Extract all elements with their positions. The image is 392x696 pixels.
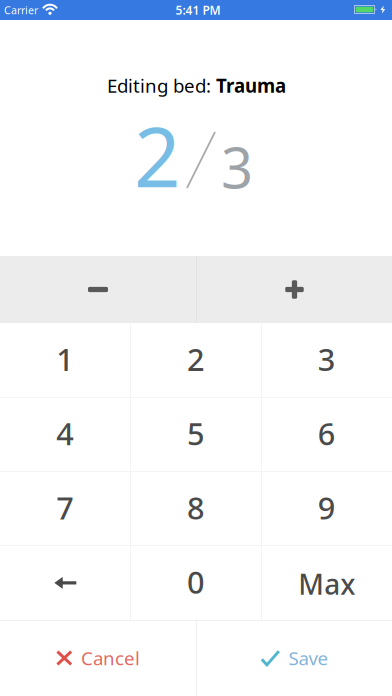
button[interactable]: 7 (0, 471, 131, 546)
staticText: 7 (56, 487, 74, 528)
button[interactable]: 2 (131, 323, 261, 397)
staticText: 3 (221, 129, 253, 204)
staticText: Cancel (81, 646, 140, 670)
button[interactable]: 6 (261, 397, 392, 471)
staticText: 5 (187, 413, 205, 454)
staticText: Carrier (4, 3, 38, 17)
staticText: 8 (187, 487, 205, 528)
button[interactable]: Decrement (0, 256, 196, 323)
button[interactable]: 8 (131, 471, 261, 546)
staticText: 9 (318, 487, 336, 528)
button[interactable]: Save (197, 620, 392, 696)
staticText: 0 (187, 561, 205, 602)
staticText: 6 (318, 413, 336, 454)
staticText: 1 (56, 339, 74, 379)
button[interactable]: 1 (0, 323, 131, 397)
button[interactable]: 3 (261, 323, 392, 397)
button[interactable]: Increment (197, 256, 392, 323)
staticText: Max (298, 565, 355, 602)
staticText: 2 (187, 339, 205, 379)
staticText: 5:41 PM (175, 2, 220, 18)
button[interactable]: 9 (261, 471, 392, 546)
button[interactable]: Cancel (0, 620, 196, 696)
staticText: 3 (318, 339, 336, 379)
button[interactable]: 0 (131, 546, 261, 620)
button[interactable]: Backspace (0, 546, 131, 620)
staticText: 2 (134, 102, 181, 210)
button[interactable]: 5 (131, 397, 261, 471)
button[interactable]: Max (261, 546, 392, 620)
button[interactable]: 4 (0, 397, 131, 471)
staticText: 4 (56, 413, 74, 454)
staticText: Editing bed: Trauma (107, 73, 286, 98)
staticText: Save (289, 646, 329, 670)
